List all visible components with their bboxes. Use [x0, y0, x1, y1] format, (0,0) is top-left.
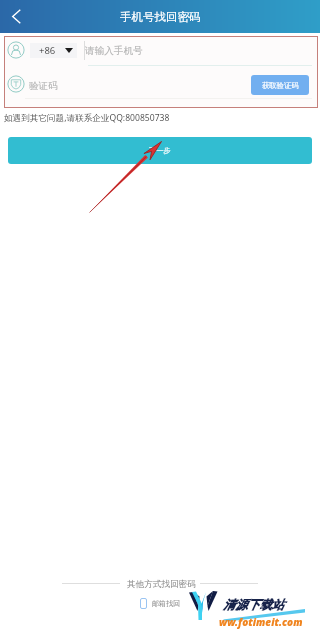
staticText: 手机号找回密码 — [120, 10, 201, 24]
button[interactable]: Back — [0, 0, 34, 33]
staticText: 邮箱找回 — [152, 599, 181, 608]
staticText: 验证码 — [29, 80, 58, 92]
staticText: 如遇到其它问题,请联系企业QQ:800850738 — [4, 112, 170, 124]
staticText: 下一步 — [149, 146, 171, 155]
button[interactable]: 下一步 — [8, 137, 312, 164]
staticText: 其他方式找回密码 — [127, 579, 196, 590]
staticText: 获取验证码 — [262, 81, 299, 90]
button[interactable]: 邮箱找回 — [140, 598, 181, 609]
staticText: 清源下载站 — [223, 597, 284, 612]
staticText: +86 — [39, 44, 56, 57]
staticText: 请输入手机号 — [85, 45, 143, 57]
button[interactable]: 获取验证码 — [251, 75, 309, 95]
button[interactable]: +86 — [30, 43, 77, 58]
staticText: ww.fotimeit.com — [219, 615, 303, 629]
